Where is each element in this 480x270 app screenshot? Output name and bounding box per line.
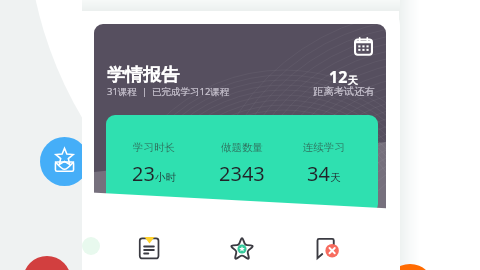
button[interactable]: 学习时长 bbox=[109, 115, 199, 213]
staticText: 小时 bbox=[155, 171, 176, 184]
staticText: 做题数量 bbox=[221, 141, 263, 154]
staticText: 距离考试还有 bbox=[313, 85, 375, 98]
button[interactable]: Favorites bbox=[225, 232, 258, 265]
staticText: 23 bbox=[132, 160, 155, 187]
button[interactable]: Add bbox=[386, 264, 434, 270]
button[interactable]: 做题数量 bbox=[197, 115, 287, 213]
button[interactable]: Notes bbox=[132, 232, 165, 265]
button[interactable]: Calendar bbox=[347, 30, 379, 62]
button[interactable]: Wrong answers bbox=[310, 232, 343, 265]
staticText: 2343 bbox=[219, 160, 265, 187]
staticText: 34 bbox=[307, 160, 330, 187]
staticText: 学习时长 bbox=[133, 141, 175, 154]
staticText: 31课程 | 已完成学习12课程 bbox=[107, 85, 230, 98]
staticText: 连续学习 bbox=[303, 141, 345, 154]
staticText: 12 bbox=[329, 66, 348, 88]
button[interactable]: Notebook bbox=[23, 256, 71, 270]
staticText: 天 bbox=[330, 171, 341, 184]
staticText: 学情报告 bbox=[107, 64, 179, 87]
button[interactable]: Inbox bbox=[40, 137, 89, 186]
button[interactable]: 连续学习 bbox=[279, 115, 369, 213]
staticText: 天 bbox=[348, 74, 358, 87]
